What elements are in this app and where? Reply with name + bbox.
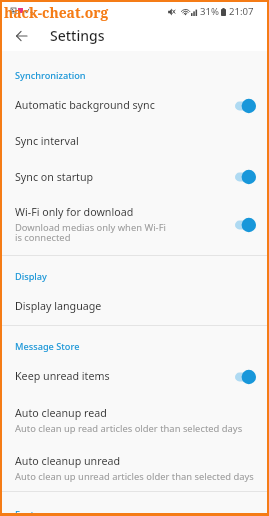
button[interactable]: Sync on startup	[2, 160, 267, 194]
staticText: Features	[15, 508, 54, 513]
staticText: hack-cheat.org	[4, 3, 109, 22]
button[interactable]: Keep unread items	[2, 359, 267, 394]
staticText: Wi-Fi only for download	[15, 205, 134, 220]
staticText: 31%	[200, 5, 219, 18]
staticText: 21:07	[229, 5, 254, 18]
staticText: Display	[15, 270, 47, 283]
staticText: Message Store	[15, 340, 80, 353]
button[interactable]: Wi-Fi only for download	[2, 194, 267, 255]
staticText: Auto clean up unread articles older than…	[15, 470, 254, 483]
button[interactable]: Back	[8, 23, 34, 49]
button[interactable]: Display language	[2, 288, 267, 325]
staticText: Download medias only when Wi-Fi is conne…	[15, 221, 166, 244]
staticText: Sync interval	[15, 134, 79, 149]
button[interactable]: Automatic background sync	[2, 88, 267, 123]
button[interactable]: Auto cleanup unread	[2, 446, 267, 491]
button[interactable]: Sync interval	[2, 123, 267, 160]
staticText: Auto clean up read articles older than s…	[15, 422, 243, 435]
staticText: Auto cleanup read	[15, 406, 107, 421]
staticText: Automatic background sync	[15, 98, 155, 113]
staticText: Sync on startup	[15, 170, 94, 185]
staticText: Keep unread items	[15, 369, 110, 384]
staticText: Display language	[15, 299, 102, 314]
staticText: Settings	[50, 26, 105, 45]
staticText: Synchronization	[15, 69, 86, 82]
staticText: Auto cleanup unread	[15, 454, 121, 469]
button[interactable]: Auto cleanup read	[2, 394, 267, 446]
